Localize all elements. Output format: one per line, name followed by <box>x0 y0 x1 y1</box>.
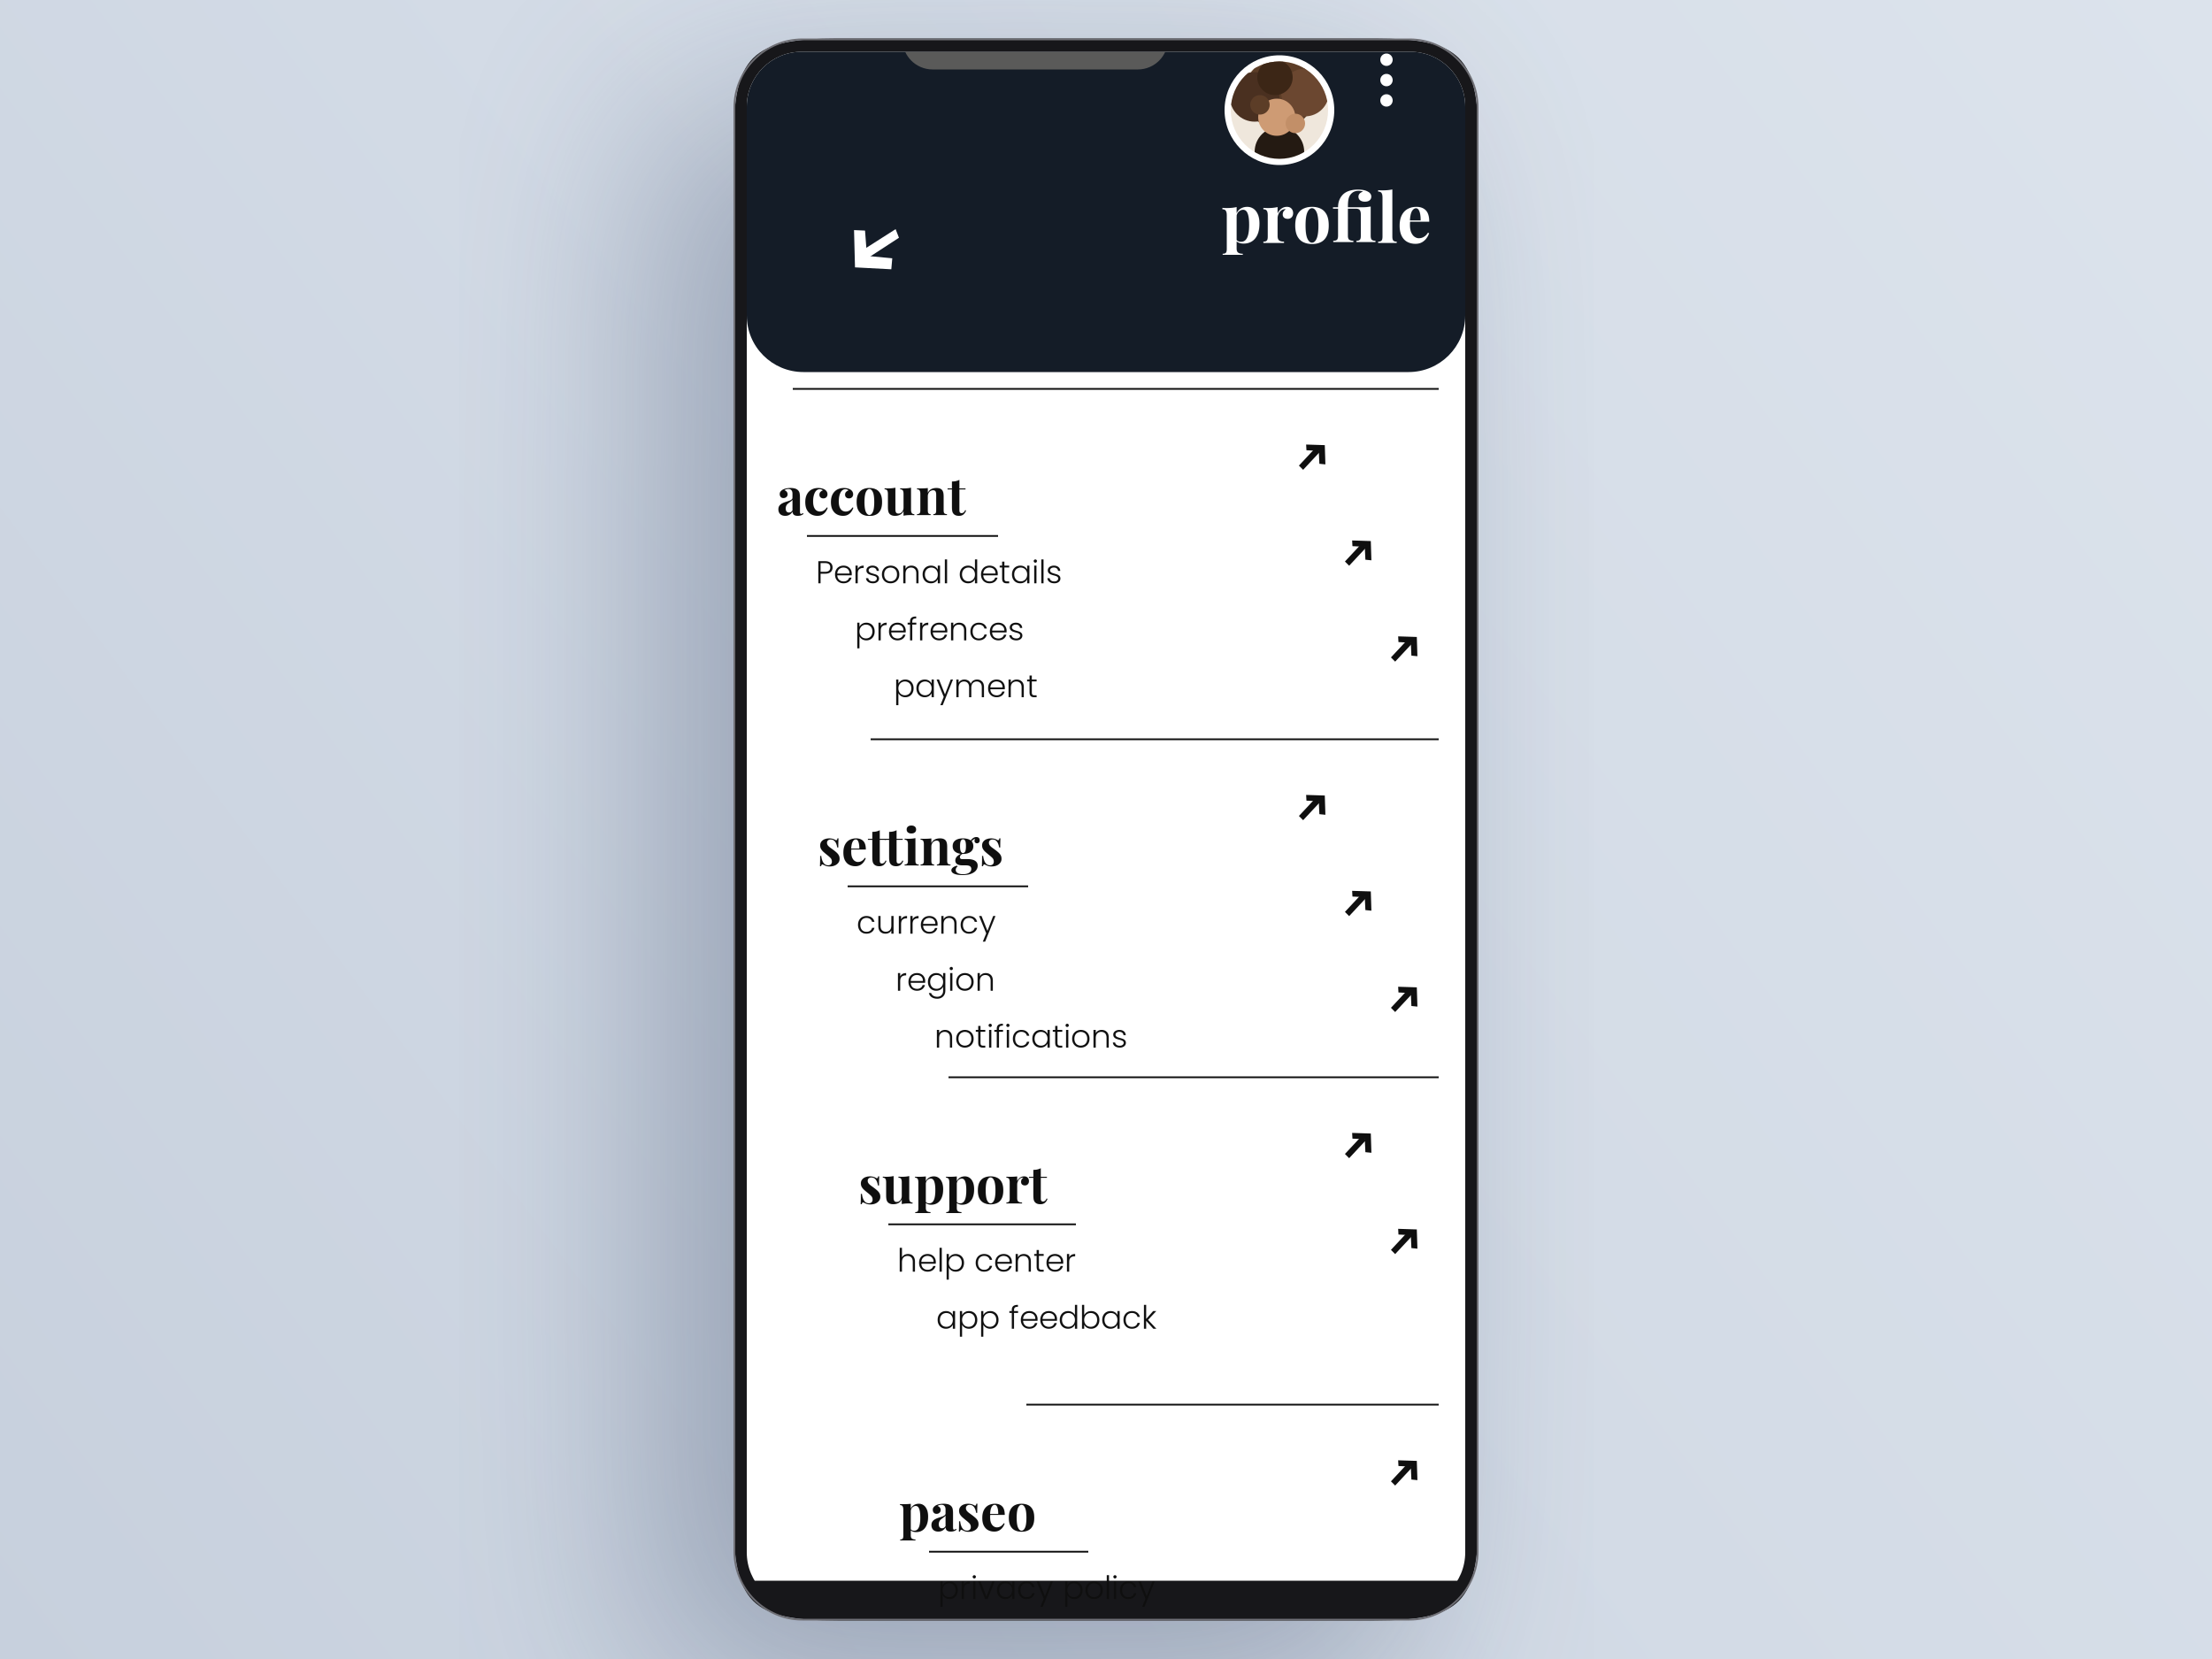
staticText: profile <box>1221 169 1432 260</box>
button[interactable]: payment <box>747 658 1465 715</box>
staticText: support <box>858 1147 1048 1216</box>
button[interactable]: region <box>747 951 1465 1008</box>
button[interactable]: Profile photo <box>1225 55 1334 165</box>
staticText: settings <box>818 809 1003 878</box>
button[interactable]: currency <box>747 894 1465 951</box>
button[interactable]: Back <box>842 215 908 280</box>
staticText: help center <box>897 1238 1076 1283</box>
button[interactable]: Personal details <box>747 544 1465 601</box>
button[interactable]: prefrences <box>747 601 1465 658</box>
staticText: app feedback <box>936 1295 1156 1340</box>
staticText: Personal details <box>816 550 1062 594</box>
button[interactable]: app feedback <box>747 1289 1465 1346</box>
button[interactable]: help center <box>747 1232 1465 1289</box>
staticText: privacy policy <box>938 1566 1156 1610</box>
staticText: notifications <box>934 1014 1127 1059</box>
button[interactable]: privacy policy <box>747 1559 1465 1616</box>
button[interactable]: More options <box>1371 45 1402 115</box>
staticText: prefrences <box>855 607 1024 651</box>
staticText: currency <box>856 900 996 945</box>
staticText: paseo <box>899 1475 1036 1544</box>
staticText: region <box>895 957 995 1002</box>
staticText: payment <box>894 664 1038 708</box>
button[interactable]: notifications <box>747 1008 1465 1065</box>
staticText: account <box>777 459 966 528</box>
